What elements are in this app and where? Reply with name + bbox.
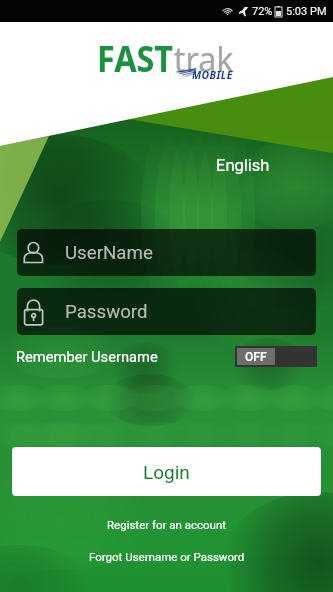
other: Password: [24, 298, 44, 326]
button[interactable]: Forgot Username or Password: [75, 546, 259, 567]
button[interactable]: English: [206, 151, 280, 180]
button[interactable]: Login: [12, 447, 321, 496]
staticText: 72%: [252, 5, 273, 18]
staticText: FAST: [97, 35, 174, 83]
staticText: Password: [65, 301, 148, 323]
staticText: MOBILE: [192, 67, 233, 82]
other: User name: [24, 239, 44, 267]
staticText: Login: [143, 461, 190, 483]
button[interactable]: Remember Username: [16, 345, 317, 368]
staticText: UserName: [65, 242, 153, 264]
staticText: trak: [174, 35, 234, 83]
staticText: 5:03 PM: [286, 5, 327, 18]
staticText: OFF: [245, 350, 267, 364]
button[interactable]: Password: [17, 288, 316, 335]
staticText: Register for an account: [107, 518, 227, 531]
button[interactable]: User name: [17, 229, 316, 276]
staticText: English: [216, 156, 270, 175]
staticText: Forgot Username or Password: [89, 550, 245, 563]
staticText: Remember Username: [16, 348, 158, 365]
button[interactable]: Register for an account: [93, 514, 241, 535]
